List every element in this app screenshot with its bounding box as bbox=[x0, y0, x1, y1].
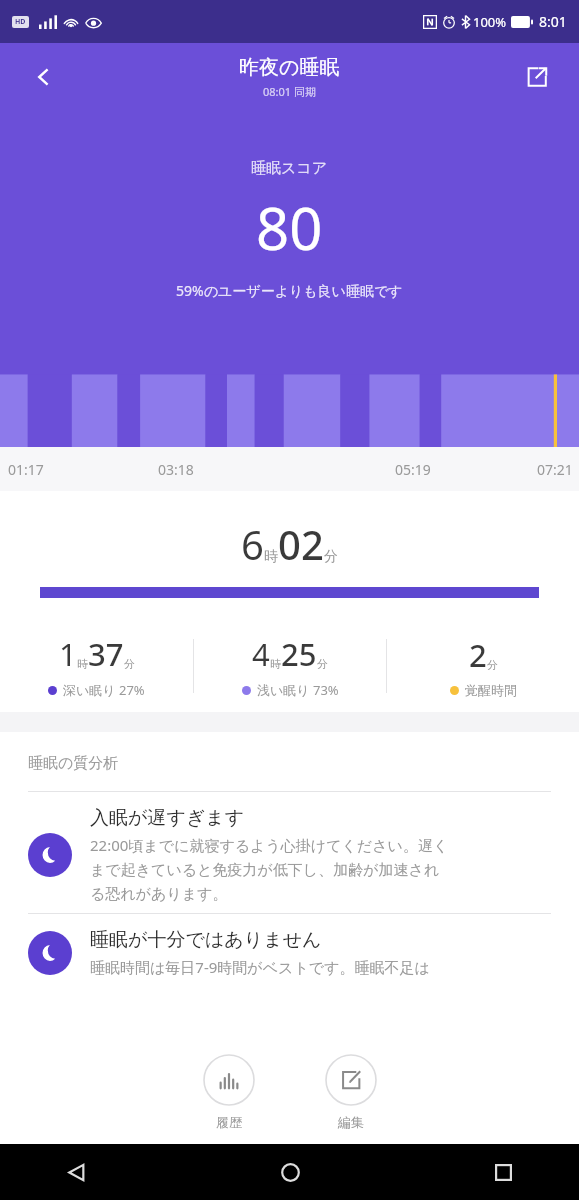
staticText: 59%のユーザーよりも良い睡眠です bbox=[176, 281, 403, 300]
button[interactable]: 入眠が遅すぎます bbox=[0, 792, 579, 913]
staticText: 履歴 bbox=[216, 1114, 242, 1130]
staticText: 01:17 bbox=[8, 460, 44, 479]
button[interactable]: Back bbox=[22, 55, 66, 99]
staticText: 22:00頃までに就寝するよう心掛けてください。遅く まで起きていると免疫力が低… bbox=[90, 835, 449, 903]
staticText: 睡眠スコア bbox=[251, 159, 328, 178]
button[interactable]: Back bbox=[54, 1150, 98, 1194]
staticText: HD bbox=[15, 17, 26, 27]
staticText: 入眠が遅すぎます bbox=[90, 806, 245, 830]
staticText: 05:19 bbox=[395, 460, 431, 479]
staticText: 時 bbox=[77, 657, 88, 671]
staticText: 分 bbox=[124, 657, 135, 671]
staticText: 睡眠時間は毎日7-9時間がベストです。睡眠不足は bbox=[90, 957, 430, 977]
staticText: 37 bbox=[88, 633, 124, 675]
staticText: 深い眠り 27% bbox=[63, 681, 145, 699]
staticText: 分 bbox=[317, 657, 328, 671]
staticText: 08:01 同期 bbox=[263, 84, 316, 99]
button[interactable]: Share bbox=[515, 55, 559, 99]
staticText: 分 bbox=[324, 548, 338, 566]
staticText: 浅い眠り 73% bbox=[257, 681, 339, 699]
staticText: 80 bbox=[256, 188, 323, 267]
staticText: 分 bbox=[487, 658, 498, 672]
staticText: 6 bbox=[241, 517, 264, 571]
staticText: 02 bbox=[278, 517, 324, 571]
staticText: 編集 bbox=[338, 1114, 364, 1130]
staticText: 昨夜の睡眠 bbox=[239, 55, 340, 80]
button[interactable]: 睡眠が十分ではありません bbox=[0, 914, 579, 987]
button[interactable]: Home bbox=[268, 1150, 312, 1194]
staticText: 100% bbox=[473, 13, 507, 31]
button[interactable]: 編集 bbox=[319, 1048, 383, 1136]
button[interactable]: 履歴 bbox=[197, 1048, 261, 1136]
staticText: 1 bbox=[59, 633, 77, 675]
staticText: 07:21 bbox=[537, 460, 573, 479]
staticText: 睡眠が十分ではありません bbox=[90, 928, 322, 952]
staticText: 8:01 bbox=[539, 12, 567, 31]
staticText: 時 bbox=[264, 548, 278, 566]
staticText: 覚醒時間 bbox=[465, 682, 517, 698]
staticText: 2 bbox=[469, 634, 487, 676]
staticText: 睡眠の質分析 bbox=[28, 754, 119, 773]
staticText: 4 bbox=[252, 633, 270, 675]
staticText: 時 bbox=[270, 657, 281, 671]
button[interactable]: Recent apps bbox=[481, 1150, 525, 1194]
staticText: 03:18 bbox=[158, 460, 194, 479]
staticText: 25 bbox=[281, 633, 317, 675]
